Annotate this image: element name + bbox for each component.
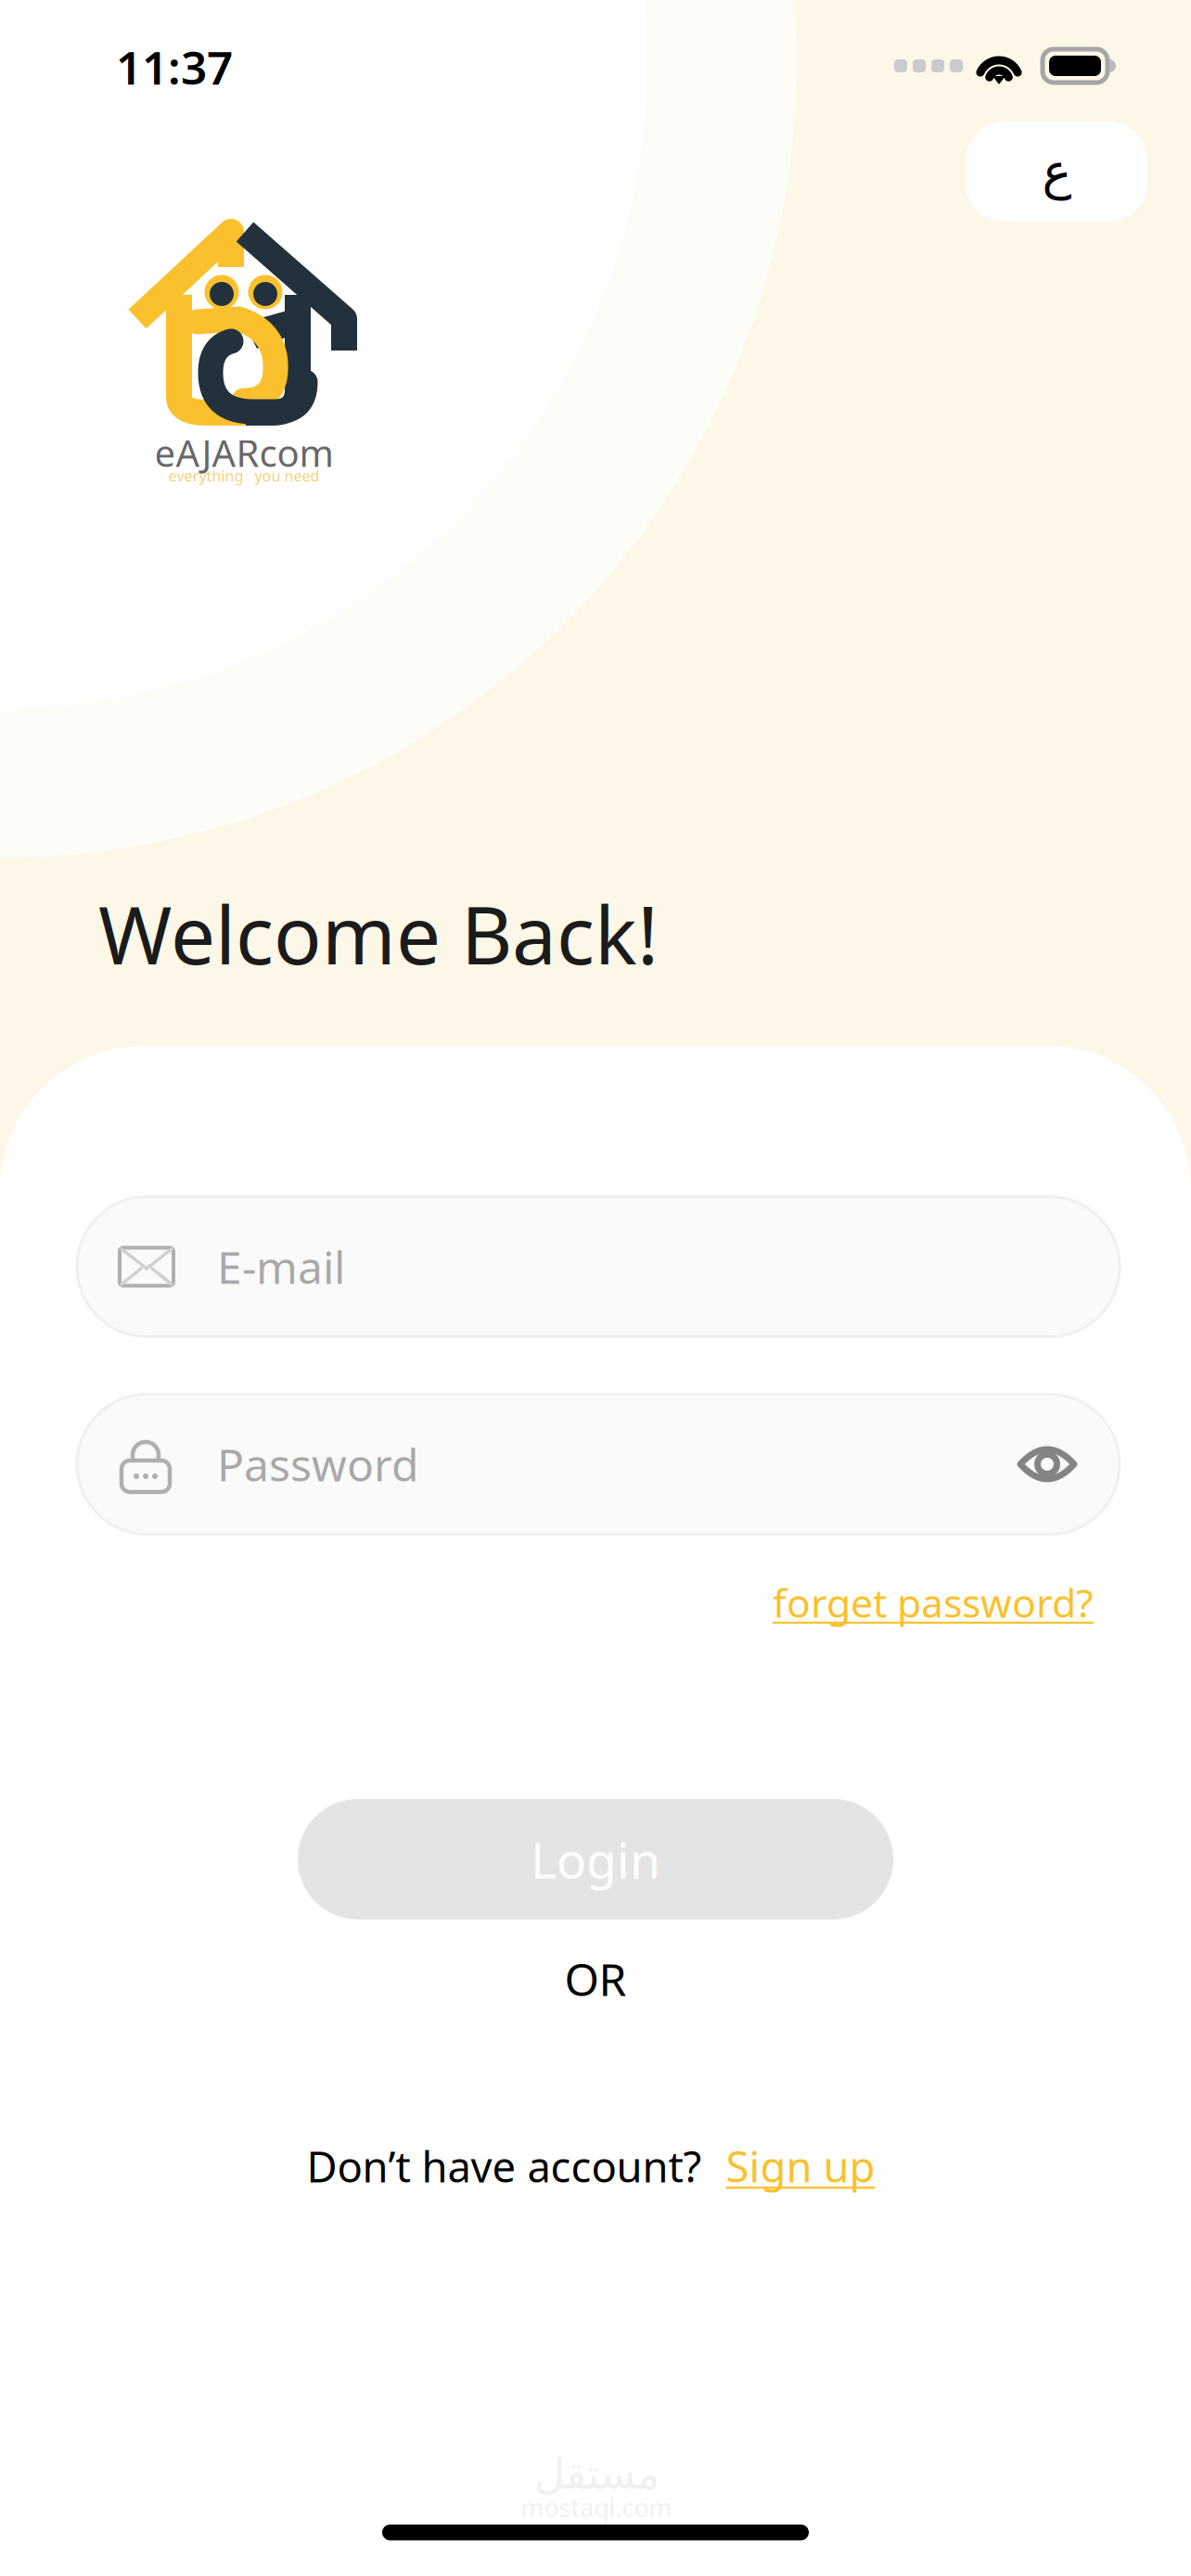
staticText: OR [564,1949,627,2008]
staticText: E-mail [217,1237,345,1296]
staticText: Login [531,1826,660,1892]
button[interactable]: Show password [1017,1443,1078,1486]
staticText: ع [1042,143,1071,200]
staticText: forget password? [773,1576,1094,1629]
staticText: Welcome Back! [98,881,659,986]
button[interactable]: forget password? [769,1567,1097,1638]
button[interactable]: Login [298,1799,893,1919]
staticText: everything you need [168,466,320,486]
staticText: eAJARcom [154,428,333,477]
button[interactable]: E-mail [77,1197,1120,1337]
staticText: mostaql.com [521,2491,672,2524]
staticText: 11:37 [116,36,233,97]
staticText: مستقل [534,2450,659,2498]
button[interactable]: Sign up [726,2138,875,2194]
staticText: Don’t have account? [307,2138,702,2194]
staticText: Sign up [726,2138,875,2194]
button[interactable]: Password [77,1394,1120,1534]
staticText: Password [217,1435,419,1494]
button[interactable]: Switch language to Arabic [966,121,1147,222]
